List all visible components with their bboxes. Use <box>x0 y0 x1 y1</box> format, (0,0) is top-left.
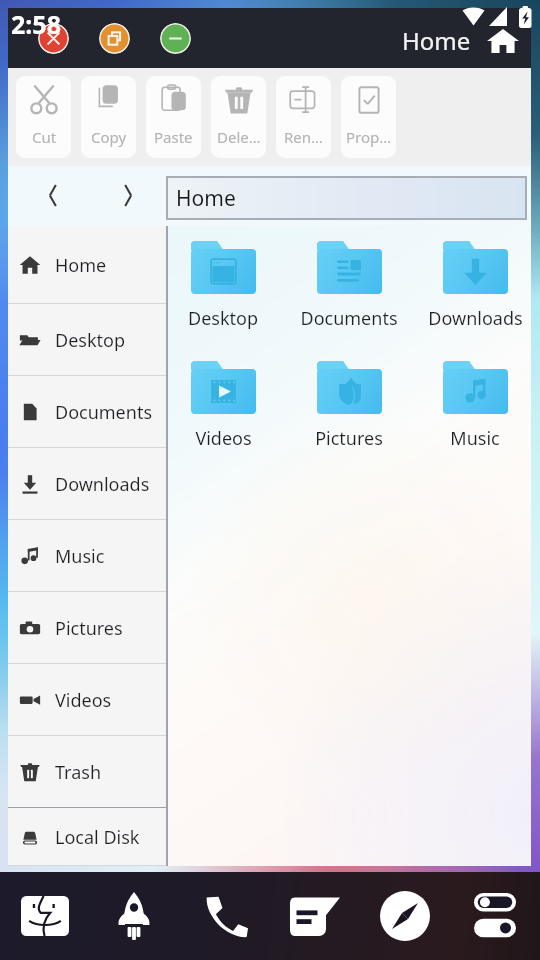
staticText: Home <box>55 253 107 278</box>
staticText: Dele… <box>217 127 261 147</box>
staticText: Documents <box>300 306 398 331</box>
button[interactable]: Pictures <box>8 592 166 664</box>
button[interactable] <box>38 23 69 54</box>
button[interactable]: Safari <box>374 879 436 953</box>
button[interactable]: Videos <box>160 346 286 466</box>
staticText: Home <box>402 24 471 57</box>
button[interactable]: Pictures <box>286 346 412 466</box>
button[interactable]: Downloads <box>8 448 166 520</box>
button[interactable]: Home <box>8 226 166 304</box>
staticText: Copy <box>91 127 127 147</box>
staticText: Videos <box>195 426 252 451</box>
staticText: Prop… <box>346 127 392 147</box>
staticText: Videos <box>55 688 112 713</box>
staticText: Downloads <box>55 472 150 497</box>
button[interactable]: Videos <box>8 664 166 736</box>
staticText: Documents <box>55 400 153 425</box>
button[interactable]: Dele… <box>211 76 266 158</box>
button[interactable]: Phone <box>195 879 257 953</box>
button[interactable]: Documents <box>8 376 166 448</box>
staticText: Music <box>55 544 105 569</box>
staticText: 2:58 <box>11 7 61 41</box>
button[interactable]: Finder <box>14 879 76 953</box>
button[interactable]: Settings <box>464 879 526 953</box>
button[interactable] <box>99 23 130 54</box>
staticText: Home <box>176 184 236 213</box>
button[interactable]: Paste <box>146 76 201 158</box>
button[interactable]: Music <box>8 520 166 592</box>
button[interactable]: Music <box>412 346 538 466</box>
button[interactable]: Messages <box>284 879 346 953</box>
button[interactable]: Downloads <box>412 226 538 346</box>
button[interactable]: Prop… <box>341 76 396 158</box>
button[interactable]: Local Disk <box>8 808 166 866</box>
button[interactable]: Forward <box>105 172 151 218</box>
staticText: Local Disk <box>55 825 140 850</box>
button[interactable]: Desktop <box>8 304 166 376</box>
staticText: Music <box>450 426 500 451</box>
button[interactable] <box>160 23 191 54</box>
staticText: Pictures <box>315 426 383 451</box>
staticText: Pictures <box>55 616 123 641</box>
button[interactable]: Documents <box>286 226 412 346</box>
button[interactable]: Back <box>30 172 76 218</box>
staticText: Downloads <box>428 306 523 331</box>
button[interactable]: Trash <box>8 736 166 808</box>
staticText: Desktop <box>188 306 258 331</box>
button[interactable]: Desktop <box>160 226 286 346</box>
staticText: Ren… <box>284 127 323 147</box>
staticText: Cut <box>32 127 57 147</box>
staticText: Trash <box>55 760 102 785</box>
staticText: Paste <box>154 127 193 147</box>
button[interactable]: Copy <box>81 76 136 158</box>
button[interactable]: Home <box>166 176 527 220</box>
staticText: Desktop <box>55 328 125 353</box>
button[interactable]: Ren… <box>276 76 331 158</box>
button[interactable]: Cut <box>16 76 71 158</box>
button[interactable]: Launchpad <box>103 879 165 953</box>
